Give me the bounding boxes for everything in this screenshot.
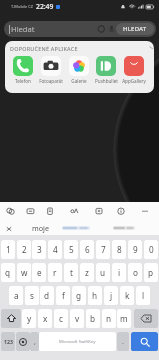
button[interactable]: p (144, 263, 158, 282)
button[interactable]: Shift (1, 309, 21, 328)
staticText: l (142, 290, 145, 301)
button[interactable]: 5 (64, 240, 78, 259)
button[interactable]: s (25, 286, 39, 305)
button[interactable]: a (9, 286, 23, 305)
staticText: Hledat (11, 24, 35, 34)
staticText: k (125, 290, 130, 301)
button[interactable]: 3 (32, 240, 46, 259)
button[interactable]: 4 (48, 240, 62, 259)
staticText: q (5, 267, 11, 278)
staticText: f (62, 290, 65, 301)
staticText: moje (32, 223, 49, 233)
button[interactable]: Galerie (65, 56, 93, 84)
button[interactable]: j (104, 286, 118, 305)
button[interactable] (61, 220, 91, 236)
button[interactable]: e (32, 263, 46, 282)
button[interactable]: Hledat (4, 21, 156, 37)
button[interactable]: g (72, 286, 86, 305)
staticText: g (76, 290, 82, 301)
button[interactable]: AppGallery (120, 56, 148, 84)
staticText: r (53, 267, 57, 278)
button[interactable]: y (22, 309, 36, 328)
button[interactable]: 0 (144, 240, 158, 259)
button[interactable]: u (96, 263, 110, 282)
button[interactable]: b (86, 309, 100, 328)
button[interactable]: z (80, 263, 94, 282)
button[interactable]: w (17, 263, 31, 282)
staticText: o (133, 267, 138, 278)
staticText: 9 (133, 244, 138, 255)
button[interactable]: 8 (112, 240, 126, 259)
button[interactable]: Collapse (149, 45, 154, 50)
button[interactable]: n (102, 309, 116, 328)
button[interactable]: r (48, 263, 62, 282)
button[interactable]: d (40, 286, 54, 305)
staticText: z (85, 267, 89, 278)
staticText: AppGallery (122, 78, 146, 84)
button[interactable]: Backspace (134, 309, 158, 328)
staticText: x (43, 313, 48, 324)
button[interactable]: l (136, 286, 150, 305)
button[interactable]: q (1, 263, 15, 282)
staticText: u (100, 267, 106, 278)
button[interactable]: Pushbullet (92, 56, 120, 84)
button[interactable]: HLEDAT (116, 23, 154, 35)
staticText: 4 (53, 244, 58, 255)
button[interactable]: m (117, 309, 131, 328)
staticText: 2 (22, 244, 27, 255)
button[interactable]: f (56, 286, 70, 305)
button[interactable]: 2 (17, 240, 31, 259)
button[interactable]: c (54, 309, 68, 328)
button[interactable]: o (128, 263, 142, 282)
staticText: s (30, 290, 34, 301)
button[interactable]: Microsoft SwiftKey (39, 332, 116, 351)
staticText: t (70, 267, 73, 278)
staticText: 0 (149, 244, 154, 255)
staticText: Fotoaparát (39, 78, 63, 84)
button[interactable]: k (120, 286, 134, 305)
staticText: i (118, 267, 121, 278)
staticText: y (27, 313, 32, 324)
staticText: m (120, 313, 128, 324)
staticText: 1 (6, 244, 11, 255)
button[interactable]: 123 (1, 332, 15, 351)
button[interactable]: Telefon (9, 56, 37, 84)
staticText: HLEDAT (123, 25, 147, 33)
staticText: 123 (4, 338, 13, 345)
staticText: DOPORUČENÉ APLIKACE (10, 45, 78, 52)
staticText: Pushbullet (95, 78, 118, 84)
staticText: 8 (117, 244, 122, 255)
button[interactable]: , (30, 332, 39, 351)
button[interactable]: 6 (80, 240, 94, 259)
button[interactable]: t (64, 263, 78, 282)
staticText: n (106, 313, 112, 324)
staticText: p (148, 267, 154, 278)
staticText: , (34, 337, 36, 347)
button[interactable]: x (38, 309, 52, 328)
staticText: . (122, 337, 124, 347)
button[interactable]: moje (24, 220, 56, 236)
staticText: Microsoft SwiftKey (59, 339, 96, 345)
button[interactable]: 9 (128, 240, 142, 259)
staticText: j (110, 290, 113, 301)
button[interactable]: Search (131, 332, 158, 351)
button[interactable]: . (117, 332, 129, 351)
staticText: d (44, 290, 50, 301)
staticText: b (90, 313, 96, 324)
button[interactable]: 7 (96, 240, 110, 259)
button[interactable]: i (112, 263, 126, 282)
staticText: a (14, 290, 19, 301)
staticText: c (59, 313, 63, 324)
button[interactable]: v (70, 309, 84, 328)
staticText: Telefon (15, 78, 31, 84)
button[interactable]: h (88, 286, 102, 305)
button[interactable]: Dismiss (6, 226, 12, 232)
button[interactable]: Fotoaparát (37, 56, 65, 84)
staticText: h (92, 290, 98, 301)
button[interactable] (112, 220, 136, 236)
button[interactable]: 1 (1, 240, 15, 259)
staticText: T-Mobile CZ (11, 4, 34, 9)
staticText: w (21, 267, 28, 278)
button[interactable]: Emoji (16, 332, 30, 351)
staticText: e (37, 267, 42, 278)
